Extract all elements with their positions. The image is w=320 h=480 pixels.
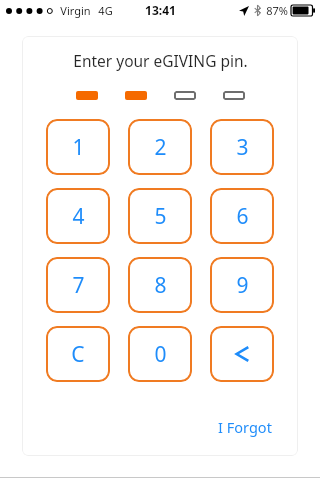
button[interactable]: Backspace — [210, 326, 274, 382]
staticText: 0 — [154, 340, 167, 369]
staticText: 5 — [154, 202, 167, 231]
staticText: 87% — [266, 3, 288, 18]
button[interactable]: 4 — [46, 188, 110, 244]
staticText: C — [71, 340, 85, 369]
button[interactable]: 3 — [210, 119, 274, 175]
button[interactable]: 6 — [210, 188, 274, 244]
staticText: 8 — [154, 271, 167, 300]
button[interactable]: 2 — [128, 119, 192, 175]
staticText: 3 — [236, 133, 249, 162]
staticText: 1 — [72, 133, 85, 162]
button[interactable]: 0 — [128, 326, 192, 382]
staticText: Virgin — [60, 3, 91, 18]
staticText: 9 — [236, 271, 249, 300]
button[interactable]: 1 — [46, 119, 110, 175]
staticText: 4G — [98, 3, 113, 18]
staticText: Enter your eGIVING pin. — [73, 50, 248, 71]
button[interactable]: 7 — [46, 257, 110, 313]
button[interactable]: Clear — [46, 326, 110, 382]
staticText: I Forgot — [218, 417, 272, 437]
staticText: 4 — [72, 202, 85, 231]
button[interactable]: 9 — [210, 257, 274, 313]
staticText: 13:41 — [145, 2, 176, 18]
staticText: 6 — [236, 202, 249, 231]
staticText: 7 — [72, 271, 85, 300]
staticText: 2 — [154, 133, 167, 162]
button[interactable]: I Forgot — [208, 414, 282, 440]
button[interactable]: 8 — [128, 257, 192, 313]
button[interactable]: 5 — [128, 188, 192, 244]
